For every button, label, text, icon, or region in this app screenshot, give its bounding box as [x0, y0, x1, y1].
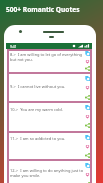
staticText: 12-> I am willing to do anything just to…	[10, 168, 84, 178]
button[interactable]: Copy	[85, 135, 90, 140]
button[interactable]: Copy	[85, 105, 90, 110]
button[interactable]: Share	[85, 153, 90, 158]
button[interactable]: Share	[85, 66, 90, 71]
button[interactable]: Favorite	[85, 59, 90, 64]
button[interactable]: Favorite	[85, 114, 90, 119]
staticText: 9:41	[10, 44, 17, 49]
button[interactable]: Copy	[85, 76, 90, 81]
button[interactable]: Share	[85, 123, 90, 128]
button[interactable]: Copy	[85, 51, 90, 56]
button[interactable]: Favorite	[85, 144, 90, 149]
staticText: 11-> I am so addicted to you.	[10, 136, 84, 141]
button[interactable]: Favorite	[85, 85, 90, 90]
staticText: 9-> I cannot live without you.	[10, 84, 84, 89]
button[interactable]: Favorite	[85, 172, 90, 177]
button[interactable]: Copy	[85, 163, 90, 168]
staticText: 10-> You are my warm cold.	[10, 107, 84, 112]
button[interactable]: Share	[85, 182, 90, 183]
button[interactable]: Share	[85, 95, 90, 100]
staticText: 8-> I am willing to let go of everything…	[10, 52, 84, 62]
staticText: 500+ Romantic Quotes	[6, 5, 80, 14]
